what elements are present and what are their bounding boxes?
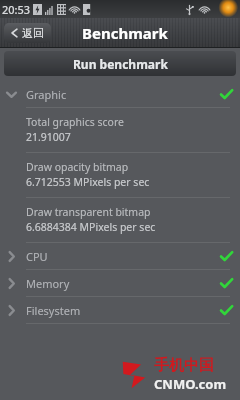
staticText: CNMO.com: [154, 375, 227, 393]
staticText: CPU: [26, 249, 48, 264]
staticText: Memory: [26, 276, 70, 291]
staticText: 手机中国: [154, 356, 214, 375]
staticText: 20:53: [2, 2, 31, 17]
staticText: Total graphics score: [26, 115, 124, 129]
staticText: 6.712553 MPixels per sec: [26, 175, 150, 189]
button[interactable]: Graphic: [0, 81, 240, 107]
button[interactable]: Run benchmark: [4, 51, 236, 76]
staticText: Filesystem: [26, 303, 81, 318]
button[interactable]: Filesystem: [0, 297, 240, 323]
staticText: Draw transparent bitmap: [26, 205, 151, 219]
button[interactable]: Memory: [0, 270, 240, 296]
button[interactable]: Draw opacity bitmap: [0, 153, 240, 197]
staticText: Graphic: [26, 87, 67, 102]
staticText: Benchmark: [82, 23, 168, 43]
staticText: Draw opacity bitmap: [26, 160, 129, 174]
staticText: 21.91007: [26, 130, 71, 144]
button[interactable]: CPU: [0, 243, 240, 269]
staticText: 返回: [22, 26, 44, 40]
button[interactable]: Total graphics score: [0, 108, 240, 152]
staticText: 6.6884384 MPixels per sec: [26, 220, 156, 234]
button[interactable]: 返回: [4, 23, 51, 43]
staticText: Run benchmark: [73, 56, 168, 72]
button[interactable]: Draw transparent bitmap: [0, 198, 240, 242]
